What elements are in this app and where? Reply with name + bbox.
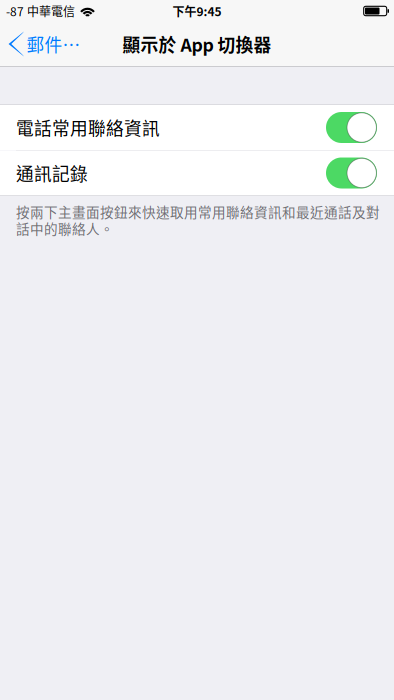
button[interactable]: 郵件… [0, 22, 91, 66]
button[interactable]: 電話常用聯絡資訊 [0, 105, 394, 150]
staticText: 電話常用聯絡資訊 [16, 115, 160, 140]
staticText: 顯示於 App 切換器 [122, 31, 271, 57]
staticText: 下午9:45 [172, 2, 221, 20]
staticText: 按兩下主畫面按鈕來快速取用常用聯絡資訊和最近通話及對話中的聯絡人。 [16, 203, 380, 237]
staticText: 郵件… [27, 31, 81, 57]
staticText: 通訊記錄 [16, 160, 88, 186]
button[interactable]: 通訊記錄 [0, 150, 394, 195]
staticText: -87 中華電信 [6, 2, 75, 20]
